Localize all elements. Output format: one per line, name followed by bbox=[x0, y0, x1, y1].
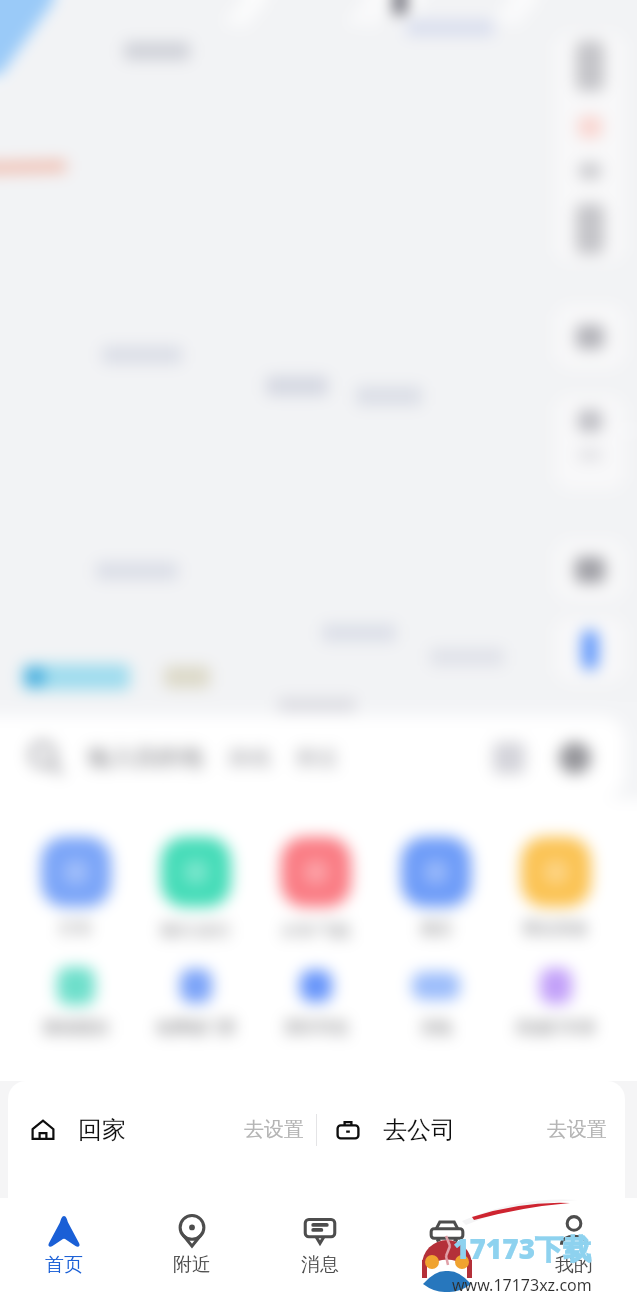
button[interactable]: Map control bbox=[555, 33, 625, 262]
staticText: 免费领门票 bbox=[156, 1018, 236, 1038]
button[interactable]: Map control bbox=[555, 305, 625, 368]
button[interactable]: 酒店 bbox=[376, 837, 496, 939]
staticText: 附近美食 bbox=[524, 919, 588, 939]
staticText: 附近 bbox=[297, 745, 339, 771]
button[interactable]: 消息 bbox=[256, 1198, 383, 1310]
button[interactable]: 充电 bbox=[376, 964, 496, 1038]
staticText: 去设置 bbox=[244, 1117, 304, 1142]
staticText: 消息 bbox=[301, 1253, 339, 1277]
button[interactable]: 打车 bbox=[383, 1198, 510, 1310]
staticText: 火车/飞机 bbox=[281, 919, 351, 941]
staticText: 输入目的地 bbox=[88, 743, 203, 772]
button[interactable]: 附近美食 bbox=[496, 837, 616, 939]
button[interactable]: 高德打车券 bbox=[496, 964, 616, 1038]
staticText: 去设置 bbox=[547, 1117, 607, 1142]
button[interactable]: 路线规划 bbox=[16, 964, 136, 1038]
button[interactable]: Scan code bbox=[493, 742, 525, 774]
staticText: 酒店 bbox=[420, 919, 452, 939]
button[interactable]: 我的 bbox=[510, 1198, 637, 1310]
button[interactable]: 首页 bbox=[0, 1198, 128, 1310]
staticText: 去公司 bbox=[383, 1115, 455, 1145]
staticText: 首页 bbox=[45, 1253, 83, 1277]
button[interactable]: Map control bbox=[555, 396, 625, 490]
staticText: 高德打车券 bbox=[516, 1018, 596, 1038]
button[interactable]: Search bbox=[0, 716, 625, 799]
button[interactable]: 附近 bbox=[128, 1198, 256, 1310]
staticText: 充电 bbox=[420, 1018, 452, 1038]
button[interactable]: 回家 bbox=[8, 1081, 316, 1178]
button[interactable]: Map control bbox=[555, 618, 625, 682]
button[interactable]: 骑行/步行 bbox=[136, 837, 256, 941]
button[interactable]: 景区导览 bbox=[256, 964, 376, 1038]
staticText: 我的 bbox=[555, 1253, 593, 1277]
staticText: 打车 bbox=[428, 1253, 466, 1277]
staticText: www.17173xz.com bbox=[452, 1274, 592, 1296]
staticText: 路线 bbox=[229, 745, 271, 771]
button[interactable]: 火车/飞机 bbox=[256, 837, 376, 941]
staticText: 17173下载 bbox=[453, 1229, 592, 1267]
button[interactable]: Profile bbox=[559, 742, 591, 774]
button[interactable]: 免费领门票 bbox=[136, 964, 256, 1038]
other: Search bbox=[26, 738, 66, 778]
staticText: 回家 bbox=[78, 1115, 126, 1145]
staticText: 附近 bbox=[173, 1253, 211, 1277]
staticText: 路线规划 bbox=[44, 1018, 108, 1038]
staticText: 景区导览 bbox=[284, 1018, 348, 1038]
staticText: 骑行/步行 bbox=[161, 919, 231, 941]
button[interactable]: Map control bbox=[555, 540, 625, 600]
staticText: 打车 bbox=[60, 919, 92, 939]
button[interactable]: 去公司 bbox=[317, 1081, 625, 1178]
button[interactable]: 打车 bbox=[16, 837, 136, 939]
